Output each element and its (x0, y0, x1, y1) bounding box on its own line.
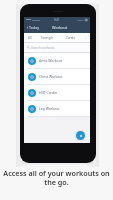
button[interactable]: Leg Workout (24, 101, 90, 116)
button[interactable]: All (28, 36, 32, 40)
button[interactable]: Strength (41, 36, 54, 40)
staticText: HIIT Cardio (39, 90, 57, 95)
button[interactable]: Arms Workout (24, 53, 90, 68)
button[interactable]: Add workout (76, 131, 85, 140)
staticText: Today (29, 25, 39, 30)
button[interactable]: Today (26, 25, 39, 30)
staticText: Arms Workout (39, 58, 62, 63)
button[interactable]: HIIT Cardio (24, 85, 90, 100)
staticText: Chest Workout (39, 74, 63, 79)
staticText: Carrier (32, 18, 41, 21)
staticText: Leg Workout (39, 106, 60, 111)
staticText: Search workouts (31, 46, 55, 50)
staticText: 9:41 (54, 18, 60, 22)
button[interactable]: Search workouts (24, 43, 90, 52)
button[interactable]: Cardio (66, 36, 76, 40)
staticText: Access all of your workouts on the go. (0, 168, 113, 187)
staticText: Workout (52, 25, 68, 30)
staticText: 100% (77, 18, 84, 21)
button[interactable]: Chest Workout (24, 69, 90, 84)
